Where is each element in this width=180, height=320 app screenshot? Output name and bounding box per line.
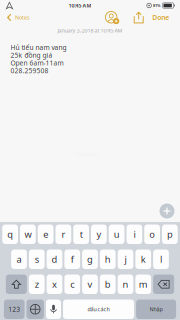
button[interactable]: s bbox=[29, 249, 45, 269]
button[interactable]: w bbox=[20, 224, 36, 244]
button[interactable]: h bbox=[100, 249, 116, 269]
button[interactable]: d bbox=[47, 249, 62, 269]
button[interactable]: m bbox=[135, 274, 151, 294]
staticText: q bbox=[7, 228, 13, 240]
staticText: g bbox=[87, 253, 93, 265]
staticText: 123 bbox=[8, 305, 20, 314]
button[interactable]: Nhập bbox=[136, 299, 176, 319]
staticText: January 3, 2018 at 10:45 AM bbox=[57, 27, 122, 34]
button[interactable]: l bbox=[153, 249, 169, 269]
button[interactable]: dấu cách bbox=[63, 299, 134, 319]
staticText: 10:45 AM bbox=[68, 2, 91, 9]
staticText: b bbox=[105, 278, 111, 290]
staticText: dấu cách bbox=[88, 306, 110, 313]
staticText: x bbox=[52, 278, 57, 290]
staticText: k bbox=[141, 253, 146, 265]
button[interactable]: x bbox=[47, 274, 62, 294]
staticText: m bbox=[139, 278, 148, 290]
staticText: f bbox=[71, 253, 74, 265]
button[interactable]: y bbox=[91, 224, 107, 244]
button[interactable]: c bbox=[64, 274, 80, 294]
staticText: u bbox=[114, 228, 120, 240]
button[interactable]: 123 bbox=[4, 299, 24, 319]
button[interactable]: r bbox=[55, 224, 71, 244]
button[interactable]: u bbox=[109, 224, 124, 244]
staticText: e bbox=[43, 228, 48, 240]
staticText: s bbox=[35, 253, 39, 265]
button[interactable]: q bbox=[2, 224, 18, 244]
staticText: o bbox=[149, 228, 155, 240]
button[interactable]: v bbox=[82, 274, 98, 294]
staticText: 81% bbox=[153, 3, 161, 8]
staticText: r bbox=[61, 228, 65, 240]
button[interactable]: f bbox=[64, 249, 80, 269]
button[interactable]: Next Keyboard bbox=[27, 299, 44, 319]
staticText: 028.259508 bbox=[10, 66, 48, 75]
button[interactable]: n bbox=[118, 274, 133, 294]
staticText: l bbox=[160, 253, 162, 265]
button[interactable]: z bbox=[29, 274, 45, 294]
staticText: v bbox=[87, 278, 92, 290]
staticText: Hủ tiếu nam vang bbox=[10, 43, 66, 52]
button[interactable]: Add Attachment bbox=[157, 201, 177, 221]
button[interactable]: g bbox=[82, 249, 98, 269]
staticText: n bbox=[122, 278, 128, 290]
staticText: j bbox=[124, 253, 126, 265]
button[interactable]: Done bbox=[149, 11, 180, 24]
button[interactable]: Dictate bbox=[46, 299, 61, 319]
button[interactable]: o bbox=[144, 224, 160, 244]
button[interactable]: p bbox=[162, 224, 178, 244]
button[interactable]: Share bbox=[128, 11, 149, 24]
button[interactable]: j bbox=[118, 249, 133, 269]
staticText: Done bbox=[152, 13, 169, 22]
button[interactable]: a bbox=[11, 249, 27, 269]
staticText: h bbox=[105, 253, 111, 265]
button[interactable]: k bbox=[135, 249, 151, 269]
staticText: Notes bbox=[15, 14, 30, 21]
button[interactable]: Add People bbox=[103, 11, 128, 24]
staticText: p bbox=[167, 228, 173, 240]
staticText: c bbox=[70, 278, 74, 290]
staticText: z bbox=[35, 278, 39, 290]
button[interactable]: t bbox=[73, 224, 89, 244]
staticText: i bbox=[133, 228, 135, 240]
button[interactable]: i bbox=[126, 224, 142, 244]
button[interactable]: Delete bbox=[153, 274, 174, 294]
staticText: y bbox=[96, 228, 101, 240]
staticText: 25k đồng giá bbox=[10, 51, 52, 60]
staticText: w bbox=[24, 228, 31, 240]
staticText: a bbox=[16, 253, 21, 265]
button[interactable]: Shift bbox=[6, 274, 27, 294]
button[interactable]: Notes bbox=[0, 11, 34, 24]
staticText: t bbox=[80, 228, 83, 240]
button[interactable]: e bbox=[38, 224, 53, 244]
staticText: Open 6am-11am bbox=[10, 59, 63, 67]
staticText: d bbox=[51, 253, 57, 265]
staticText: Nhập bbox=[150, 306, 163, 313]
button[interactable]: b bbox=[100, 274, 116, 294]
